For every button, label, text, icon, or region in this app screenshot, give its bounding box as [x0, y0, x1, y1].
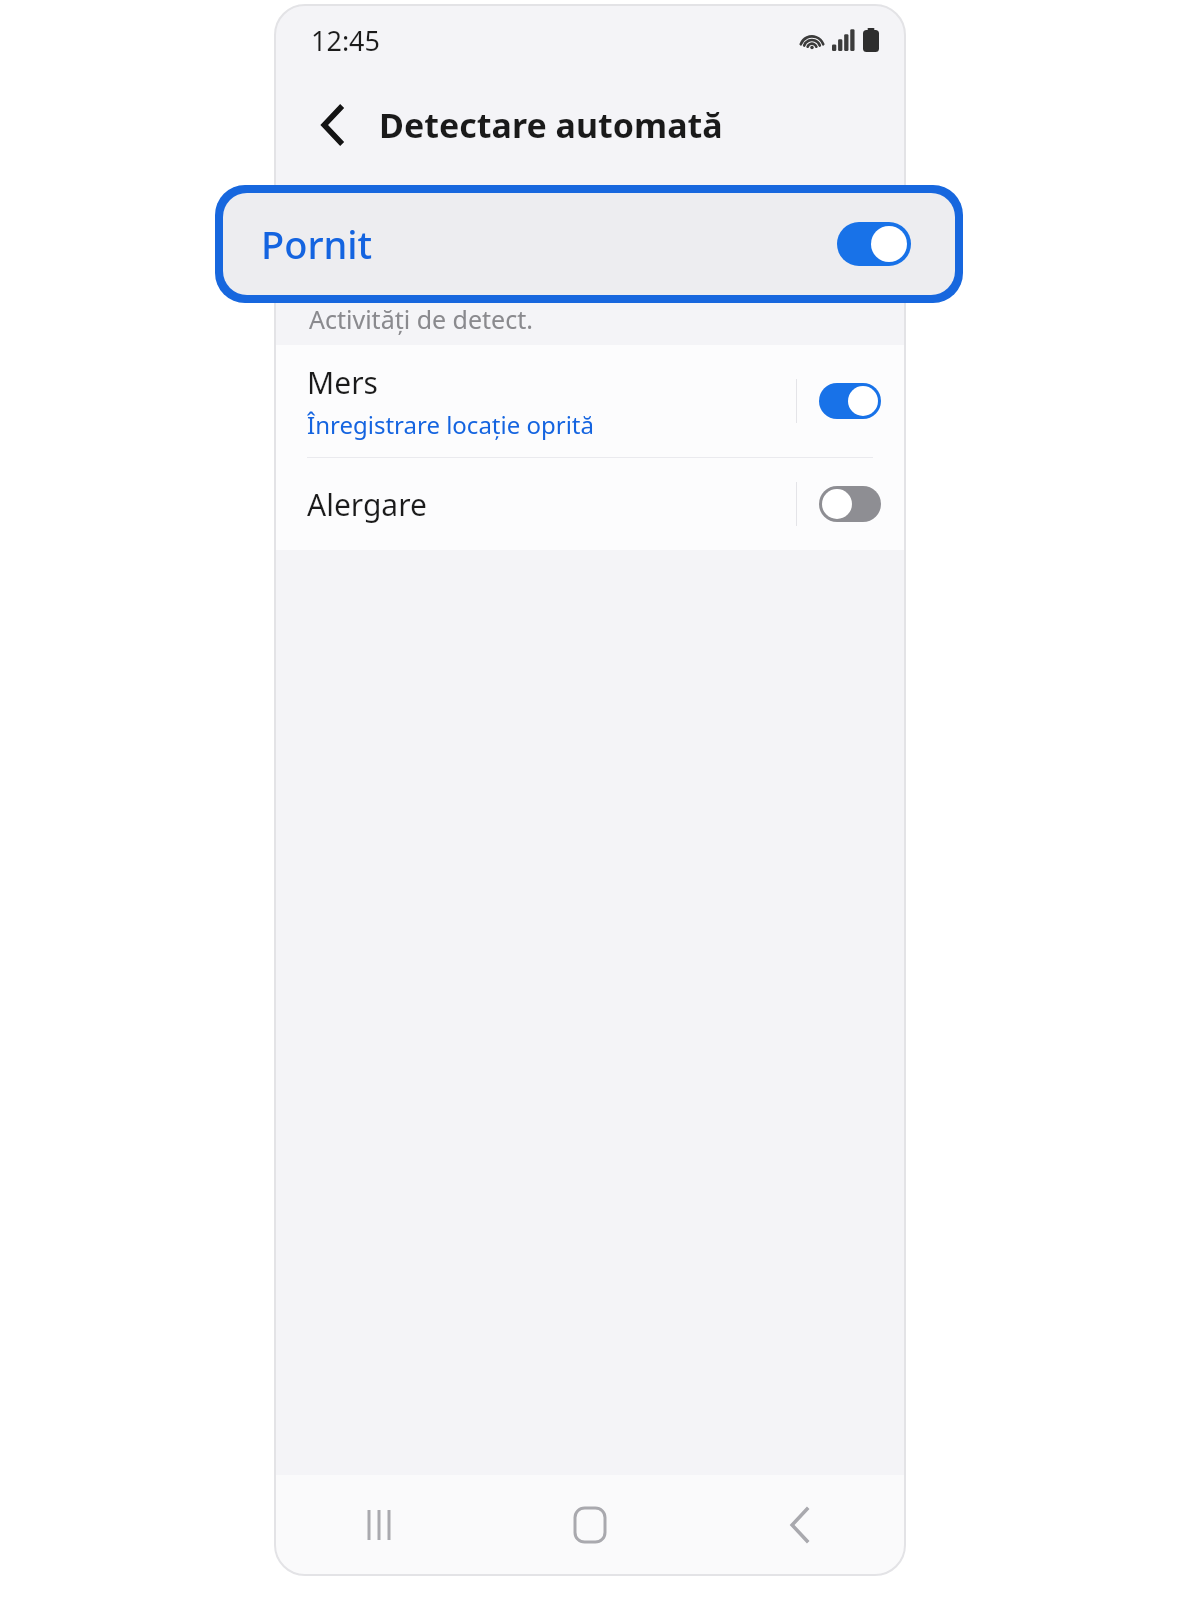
button[interactable]: Alergare: [275, 458, 905, 550]
button[interactable]: Mers: [275, 345, 905, 457]
staticText: Detectare automată antrenam...: [379, 102, 885, 148]
button[interactable]: Off: [819, 486, 881, 522]
button[interactable]: Home: [485, 1475, 695, 1575]
button[interactable]: On: [819, 383, 881, 419]
staticText: Alergare: [307, 484, 427, 525]
button[interactable]: Back: [305, 97, 361, 153]
staticText: Mers: [307, 362, 378, 403]
button[interactable]: Back: [695, 1475, 905, 1575]
staticText: Activități de detect.: [309, 302, 533, 336]
button[interactable]: Recent apps: [275, 1475, 485, 1575]
staticText: Pornit: [261, 218, 373, 270]
staticText: Înregistrare locație oprită: [307, 408, 594, 441]
button[interactable]: Pornit: [223, 193, 955, 295]
staticText: 12:45: [311, 22, 381, 59]
button[interactable]: On: [837, 222, 911, 266]
